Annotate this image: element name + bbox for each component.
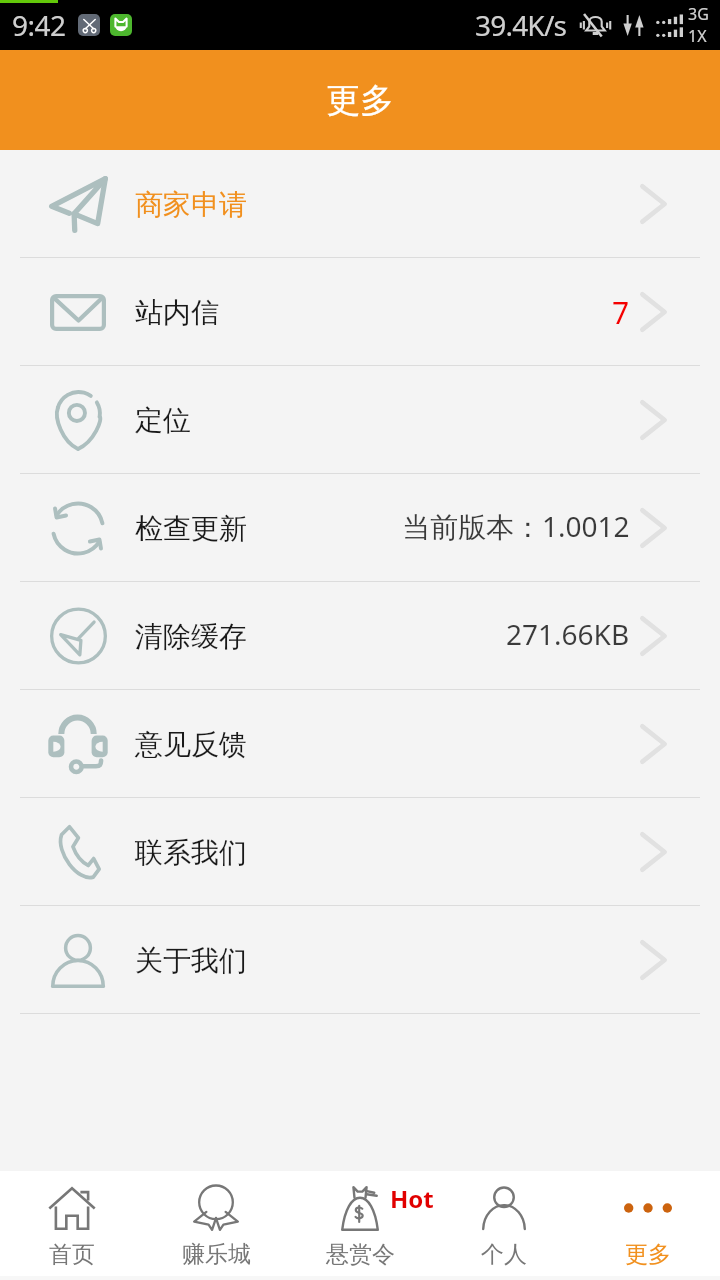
staticText: 悬赏令: [326, 1240, 395, 1269]
button[interactable]: 商家申请: [0, 150, 720, 258]
staticText: 更多: [326, 79, 394, 122]
staticText: 检查更新: [135, 511, 247, 546]
staticText: 清除缓存: [135, 619, 247, 654]
staticText: 7: [612, 292, 630, 333]
staticText: 联系我们: [135, 835, 247, 870]
staticText: 9:42: [12, 6, 66, 44]
button[interactable]: Hot: [288, 1171, 432, 1276]
staticText: 39.4K/s: [475, 6, 567, 44]
button[interactable]: 定位: [0, 366, 720, 474]
staticText: 商家申请: [135, 187, 247, 222]
staticText: 1X: [688, 25, 707, 47]
staticText: 个人: [481, 1240, 527, 1269]
button[interactable]: 更多: [576, 1171, 720, 1276]
staticText: 更多: [625, 1240, 671, 1269]
button[interactable]: 个人: [432, 1171, 576, 1276]
button[interactable]: 检查更新: [0, 474, 720, 582]
button[interactable]: 意见反馈: [0, 690, 720, 798]
staticText: 站内信: [135, 295, 219, 330]
staticText: 3G: [688, 3, 709, 25]
staticText: 意见反馈: [135, 727, 247, 762]
button[interactable]: 关于我们: [0, 906, 720, 1014]
button[interactable]: 联系我们: [0, 798, 720, 906]
staticText: 赚乐城: [182, 1240, 251, 1269]
staticText: Hot: [390, 1182, 434, 1215]
button[interactable]: 首页: [0, 1171, 144, 1276]
button[interactable]: 赚乐城: [144, 1171, 288, 1276]
staticText: 首页: [49, 1240, 95, 1269]
staticText: 271.66KB: [506, 615, 630, 653]
button[interactable]: 站内信: [0, 258, 720, 366]
staticText: 关于我们: [135, 943, 247, 978]
button[interactable]: 清除缓存: [0, 582, 720, 690]
staticText: 当前版本：1.0012: [402, 507, 630, 545]
staticText: 定位: [135, 403, 191, 438]
